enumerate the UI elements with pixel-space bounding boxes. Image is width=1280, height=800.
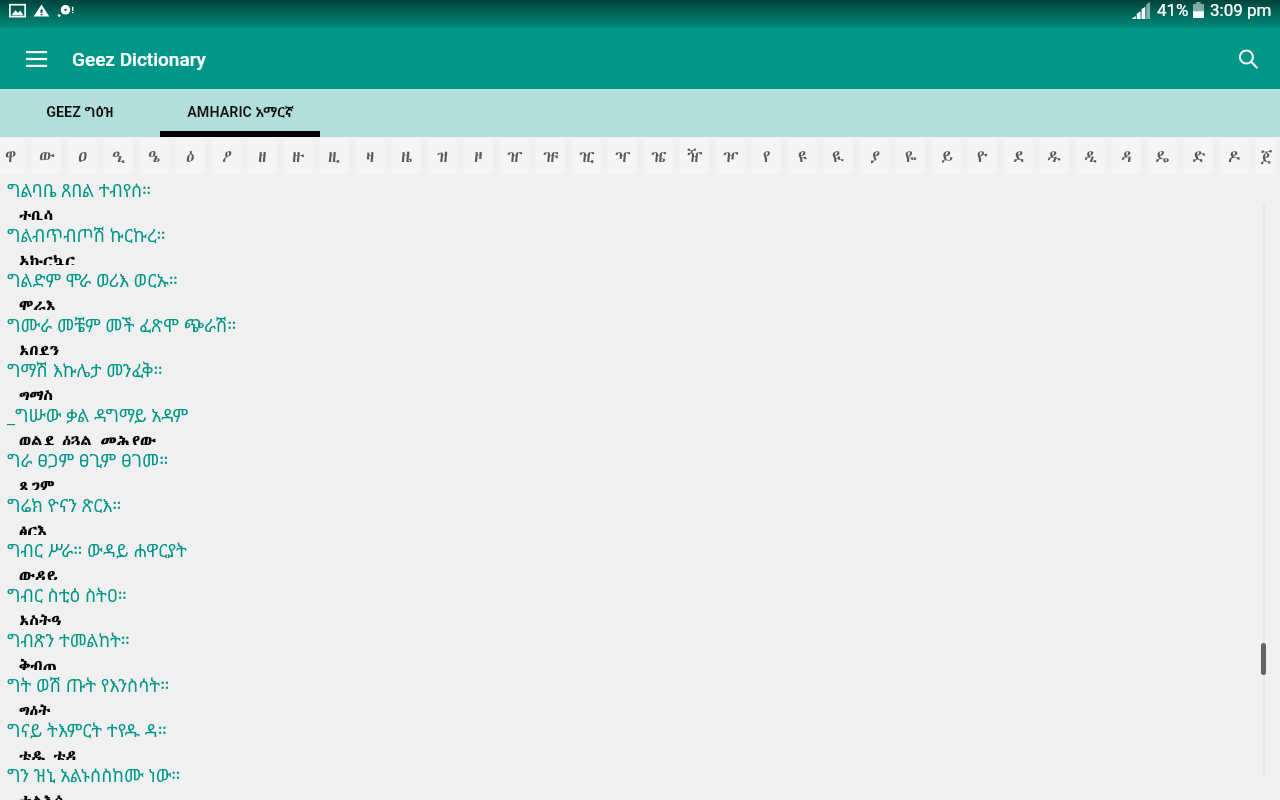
button[interactable]: ዞ	[464, 138, 493, 175]
staticText: ዕ	[186, 145, 195, 168]
button[interactable]: ግልባቤ ጸበል ተብየሰ።	[0, 175, 1280, 220]
staticText: 3:09 pm	[1210, 0, 1272, 20]
button[interactable]: ዲ	[1076, 138, 1105, 175]
button[interactable]: ዘ	[248, 138, 277, 175]
button[interactable]: ዢ	[572, 138, 601, 175]
staticText: ግልብጥብጦሽ ኩርኩረ።	[7, 223, 166, 248]
staticText: ግት ወሽ ጡት የእንስሳት።	[7, 673, 170, 698]
button[interactable]: ዣ	[608, 138, 637, 175]
button[interactable]: ግማሽ እኩሌታ መንፈቅ።	[0, 355, 1280, 400]
button[interactable]: ዝ	[428, 138, 457, 175]
button[interactable]: Open navigation drawer	[14, 37, 58, 81]
staticText: ዢ	[579, 145, 595, 168]
button[interactable]: _ግሡው ቃል ዳግማይ አዳም	[0, 400, 1280, 445]
button[interactable]: ደ	[1004, 138, 1033, 175]
staticText: ዥ	[687, 145, 703, 168]
button[interactable]: ዕ	[176, 138, 205, 175]
button[interactable]: ዒ	[104, 138, 133, 175]
staticText: ግሬክ ዮናን ጽርእ።	[7, 493, 122, 518]
staticText: ዩ	[798, 145, 808, 168]
button[interactable]: ዡ	[536, 138, 565, 175]
staticText: ዚ	[328, 145, 341, 168]
button[interactable]: ግሙራ መቼም መች ፈጽሞ ጭራሽ።	[0, 310, 1280, 355]
button[interactable]: ግት ወሽ ጡት የእንስሳት።	[0, 670, 1280, 715]
button[interactable]: ዬ	[896, 138, 925, 175]
staticText: _ግሡው ቃል ዳግማይ አዳም	[7, 403, 189, 428]
button[interactable]: የ	[752, 138, 781, 175]
button[interactable]: ግሬክ ዮናን ጽርእ።	[0, 490, 1280, 535]
staticText: ዤ	[651, 145, 667, 168]
button[interactable]: ዠ	[500, 138, 529, 175]
button[interactable]: ግልድም ሞራ ወሪእ ወርኡ።	[0, 265, 1280, 310]
button[interactable]: ግራ ፀጋም ፀጊም ፀገመ።	[0, 445, 1280, 490]
staticText: ዒ	[112, 145, 126, 168]
button[interactable]: ዛ	[356, 138, 385, 175]
button[interactable]: Search	[1226, 37, 1270, 81]
button[interactable]: ድ	[1184, 138, 1213, 175]
button[interactable]: ዥ	[680, 138, 709, 175]
staticText: ይ	[941, 145, 953, 168]
button[interactable]: ዪ	[824, 138, 853, 175]
staticText: ቅብጢ	[19, 655, 61, 670]
staticText: ፅርእ	[19, 520, 48, 535]
staticText: ዞ	[474, 145, 483, 168]
staticText: ዘ	[258, 145, 267, 168]
button[interactable]: ዮ	[968, 138, 997, 175]
staticText: ዔ	[148, 145, 161, 168]
button[interactable]: ዚ	[320, 138, 349, 175]
button[interactable]: ዖ	[212, 138, 241, 175]
button[interactable]: ግን ዝኒ አልኑሰስከሙ ነው።	[0, 760, 1280, 800]
staticText: ድ	[1192, 145, 1206, 168]
button[interactable]: ዐ	[68, 138, 97, 175]
button[interactable]: ዜ	[392, 138, 421, 175]
staticText: ዡ	[543, 145, 559, 168]
button[interactable]: ግብር ስቲዕ ስትዐ።	[0, 580, 1280, 625]
button[interactable]: ጀ	[1256, 138, 1276, 175]
staticText: ዠ	[507, 145, 523, 168]
button[interactable]: ዴ	[1148, 138, 1177, 175]
staticText: ዙ	[292, 145, 305, 168]
staticText: ዦ	[723, 145, 739, 168]
staticText: ያ	[870, 145, 880, 168]
staticText: ዲ	[1084, 145, 1098, 168]
staticText: GEEZ ግዕዝ	[46, 102, 114, 121]
staticText: ዛ	[366, 145, 375, 168]
staticText: ውዳይ	[19, 565, 58, 580]
staticText: ዖ	[222, 145, 232, 168]
button[interactable]: ግናይ ትእምርት ተየዱ ዳ።	[0, 715, 1280, 760]
staticText: ዜ	[401, 145, 413, 168]
button[interactable]: ይ	[932, 138, 961, 175]
staticText: ኣኩርኳር	[19, 250, 76, 265]
staticText: ዴ	[1155, 145, 1170, 168]
staticText: AMHARIC አማርኛ	[187, 102, 294, 121]
button[interactable]: ዶ	[1220, 138, 1249, 175]
button[interactable]: AMHARIC አማርኛ	[160, 89, 320, 137]
button[interactable]: ዋ	[0, 138, 25, 175]
button[interactable]: ግብጽን ተመልከት።	[0, 625, 1280, 670]
button[interactable]: ያ	[860, 138, 889, 175]
staticText: ዮ	[977, 145, 988, 168]
staticText: ግዕት	[19, 700, 51, 715]
button[interactable]: ዩ	[788, 138, 817, 175]
button[interactable]: ግብር ሥራ። ውዳይ ሐዋርያት	[0, 535, 1280, 580]
button[interactable]: ዳ	[1112, 138, 1141, 175]
button[interactable]: ዔ	[140, 138, 169, 175]
button[interactable]: ዙ	[284, 138, 313, 175]
staticText: 41%	[1157, 0, 1189, 20]
button[interactable]: ዤ	[644, 138, 673, 175]
staticText: ግማስ	[19, 385, 53, 400]
button[interactable]: ግልብጥብጦሽ ኩርኩረ።	[0, 220, 1280, 265]
button[interactable]: ዱ	[1040, 138, 1069, 175]
staticText: ግልድም ሞራ ወሪእ ወርኡ።	[7, 268, 178, 293]
staticText: ዋ	[5, 145, 17, 168]
staticText: ግብር ሥራ። ውዳይ ሐዋርያት	[7, 538, 187, 563]
staticText: የ	[763, 145, 771, 168]
button[interactable]: ው	[32, 138, 61, 175]
staticText: ደ	[1013, 145, 1025, 168]
button[interactable]: GEEZ ግዕዝ	[0, 89, 160, 137]
staticText: ግን ዝኒ አልኑሰስከሙ ነው።	[7, 763, 181, 788]
staticText: ግሙራ መቼም መች ፈጽሞ ጭራሽ።	[7, 313, 237, 338]
button[interactable]: ዦ	[716, 138, 745, 175]
staticText: አበደን	[19, 340, 59, 355]
staticText: Geez Dictionary	[72, 48, 206, 70]
